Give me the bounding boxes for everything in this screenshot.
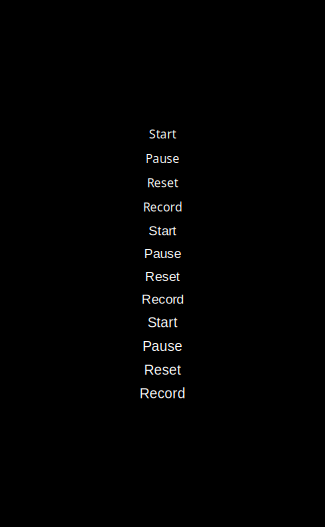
staticText: Reset [147,174,178,191]
staticText: Reset [144,362,181,378]
staticText: Pause [144,246,181,261]
staticText: Record [139,386,185,401]
staticText: Reset [145,269,180,284]
staticText: Pause [145,150,179,166]
staticText: Start [147,315,177,330]
staticText: Pause [142,338,182,354]
staticText: Start [149,126,176,142]
staticText: Record [143,199,182,215]
staticText: Record [141,292,183,307]
staticText: Start [148,223,176,238]
